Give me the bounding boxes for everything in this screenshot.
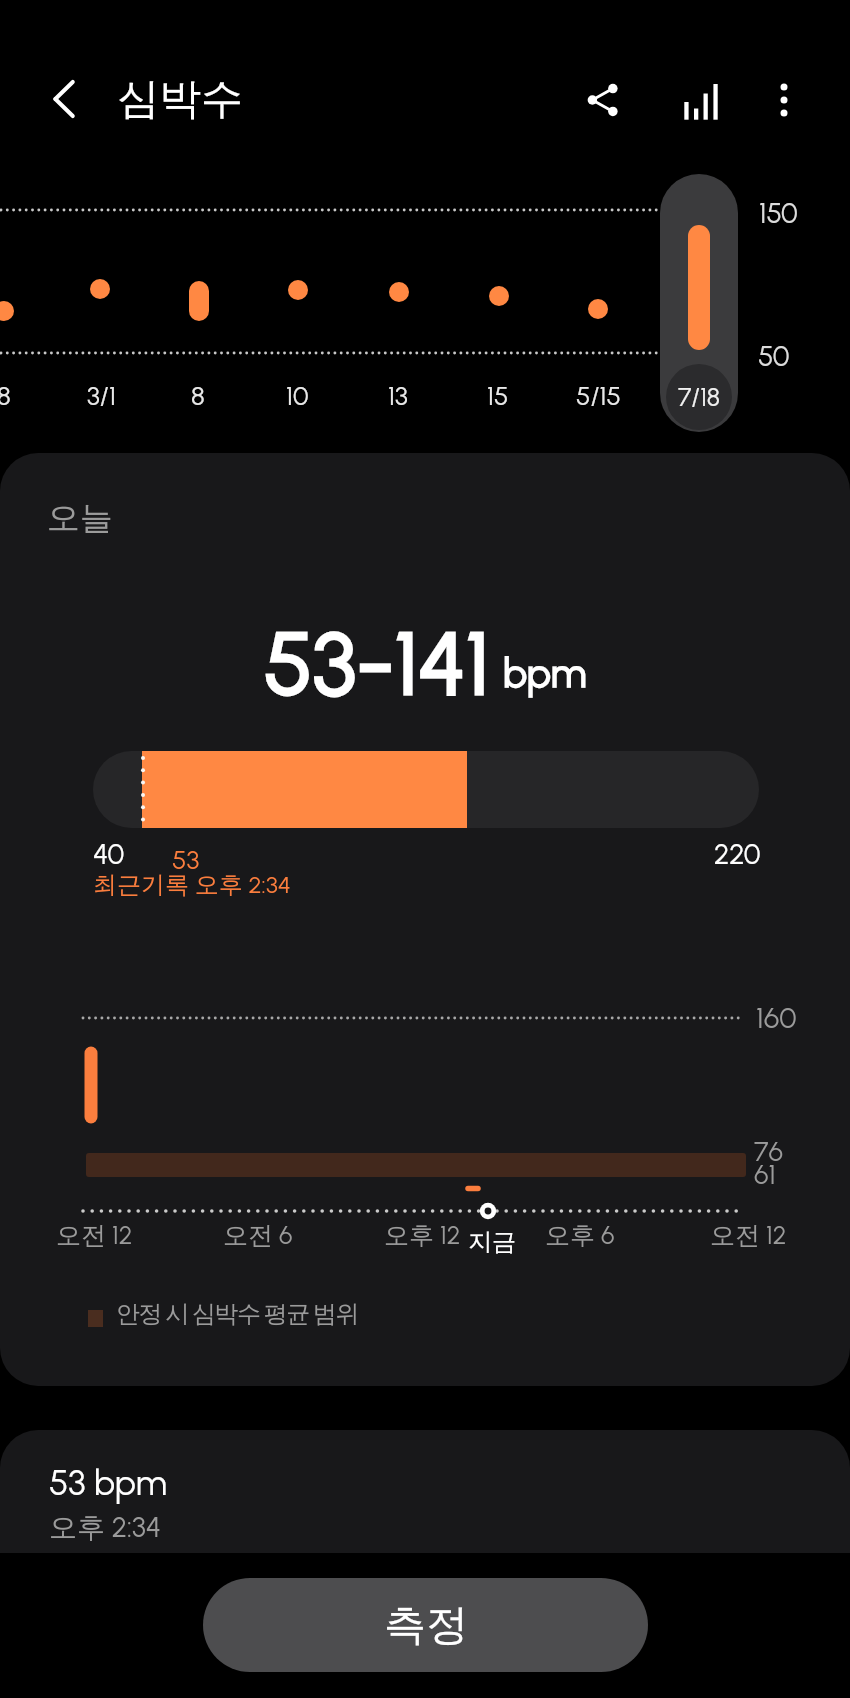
button[interactable]: Back — [36, 70, 94, 128]
staticText: 오전 6 — [223, 1220, 293, 1251]
staticText: 최근기록 오후 2:34 — [93, 870, 291, 900]
staticText: 10 — [286, 380, 309, 411]
staticText: 7/18 — [678, 382, 720, 412]
staticText: 160 — [756, 1000, 797, 1035]
staticText: 측정 — [384, 1599, 468, 1652]
button[interactable]: 측정 — [203, 1578, 648, 1672]
staticText: 53 — [172, 844, 200, 875]
staticText: 8 — [0, 380, 11, 411]
staticText: 53-141 — [264, 610, 490, 716]
button[interactable]: Selected day 7/18 — [660, 174, 738, 432]
staticText: 오늘 — [47, 497, 113, 539]
staticText: 76 — [754, 1135, 783, 1167]
button[interactable]: Share — [573, 70, 632, 129]
staticText: 오전 12 — [710, 1220, 787, 1251]
button[interactable]: Chart — [671, 70, 730, 129]
staticText: 3/1 — [87, 380, 116, 411]
staticText: 오후 12 — [384, 1220, 461, 1251]
staticText: 오후 2:34 — [49, 1510, 162, 1545]
staticText: 심박수 — [117, 73, 243, 126]
staticText: 150 — [759, 196, 798, 230]
button[interactable]: More options — [754, 70, 813, 129]
staticText: 50 — [758, 339, 790, 373]
staticText: 53 bpm — [49, 1462, 167, 1504]
staticText: 15 — [487, 380, 509, 411]
staticText: 13 — [388, 380, 408, 411]
staticText: bpm — [503, 649, 587, 697]
staticText: 8 — [191, 380, 205, 411]
staticText: 5/15 — [576, 380, 621, 411]
staticText: 안정 시 심박수 평균 범위 — [116, 1299, 359, 1329]
staticText: 오후 6 — [545, 1220, 615, 1251]
staticText: 지금 — [468, 1227, 516, 1257]
staticText: 61 — [754, 1158, 776, 1190]
button[interactable]: 53 bpm — [0, 1430, 850, 1553]
staticText: 오전 12 — [56, 1220, 133, 1251]
staticText: 40 — [93, 837, 125, 871]
staticText: 220 — [714, 837, 761, 871]
